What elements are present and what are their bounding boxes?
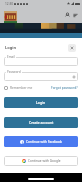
button[interactable]: Create account <box>4 117 78 128</box>
button[interactable]: Account <box>64 12 71 19</box>
button[interactable]: Continue with Facebook <box>4 136 78 147</box>
button[interactable]: Close <box>68 44 76 52</box>
staticText: Password <box>7 70 21 74</box>
staticText: Create account <box>29 120 54 125</box>
staticText: Login <box>36 100 46 105</box>
button[interactable]: Remember me <box>4 86 33 90</box>
button[interactable]: Forgot password? <box>51 86 78 90</box>
staticText: Remember me <box>10 86 33 90</box>
button[interactable] <box>4 57 78 66</box>
button[interactable]: Login <box>4 97 78 108</box>
button[interactable]: Menu <box>72 12 79 19</box>
staticText: Login <box>5 45 17 50</box>
staticText: 12:30 <box>5 2 14 6</box>
staticText: Continue with Facebook <box>26 140 63 144</box>
staticText: Email <box>7 55 15 59</box>
button[interactable] <box>4 72 78 81</box>
button[interactable]: Show password <box>71 74 76 79</box>
button[interactable]: Continue with Google <box>4 156 78 166</box>
staticText: Continue with Google <box>28 159 61 163</box>
